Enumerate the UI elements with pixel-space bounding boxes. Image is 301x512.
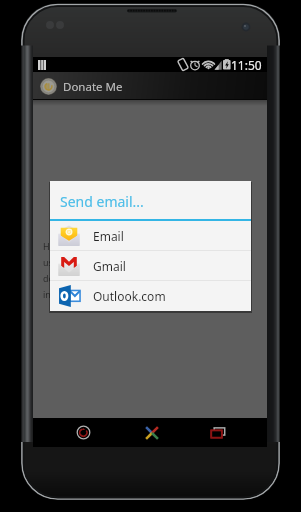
staticText: Gmail [93, 258, 126, 274]
button[interactable]: Recent apps [196, 418, 240, 447]
staticText: Send email... [60, 192, 144, 211]
button[interactable]: Back [61, 418, 105, 447]
staticText: in any amount is appreciated. [43, 288, 169, 300]
button[interactable]: Email [50, 221, 251, 250]
staticText: 11:50 [231, 57, 262, 72]
button[interactable]: Gmail [50, 251, 251, 280]
staticText: Email [93, 228, 124, 244]
staticText: donation. Every contribution [43, 272, 164, 284]
staticText: Donate Me [63, 79, 123, 95]
staticText: useful, please consider making a [43, 256, 182, 268]
staticText: Hello! If you find this application [43, 240, 180, 252]
staticText: Outlook.com [93, 288, 166, 304]
button[interactable]: Outlook.com [50, 281, 251, 310]
button[interactable]: Home [130, 418, 174, 447]
